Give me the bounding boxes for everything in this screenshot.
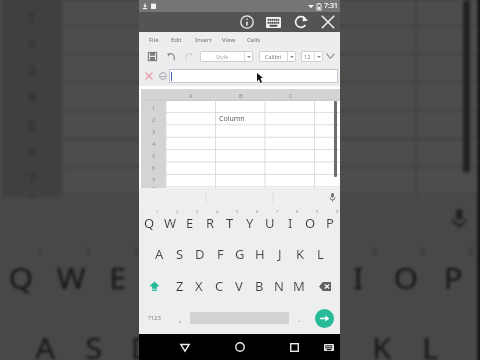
button[interactable]: K — [290, 238, 310, 270]
button[interactable]: Y — [238, 241, 286, 311]
button[interactable]: Undo — [164, 47, 178, 65]
button[interactable]: U — [286, 241, 334, 311]
button[interactable]: Save — [145, 47, 159, 65]
button[interactable]: Cancel — [142, 65, 155, 86]
button[interactable]: Q — [0, 241, 47, 311]
button[interactable]: A — [21, 311, 71, 360]
button[interactable] — [300, 164, 420, 191]
button[interactable]: Y — [240, 207, 260, 238]
button[interactable]: X — [189, 270, 209, 302]
button[interactable]: Refresh — [293, 12, 308, 32]
button[interactable]: View — [220, 32, 238, 47]
button[interactable]: C — [266, 89, 316, 101]
button[interactable]: E — [95, 241, 143, 311]
button[interactable]: V — [229, 270, 249, 302]
button[interactable]: K — [358, 311, 406, 360]
button[interactable]: H — [250, 238, 270, 270]
button[interactable] — [181, 109, 300, 136]
button[interactable] — [266, 185, 316, 188]
button[interactable]: W — [160, 207, 180, 238]
button[interactable]: 12 — [301, 51, 323, 62]
button[interactable]: Redo — [181, 47, 195, 65]
button[interactable]: Q — [139, 207, 160, 238]
button[interactable]: Insert — [193, 32, 214, 47]
button[interactable]: Calibri — [259, 51, 296, 62]
button[interactable]: Home — [227, 334, 253, 360]
button[interactable]: Voice input — [439, 198, 477, 241]
button[interactable] — [166, 173, 216, 185]
button[interactable] — [266, 125, 316, 137]
button[interactable] — [61, 82, 181, 109]
button[interactable] — [266, 113, 316, 125]
button[interactable]: E — [180, 207, 200, 238]
button[interactable] — [266, 137, 316, 149]
button[interactable]: Switch keyboard — [319, 334, 339, 360]
button[interactable]: S — [170, 238, 190, 270]
button[interactable] — [216, 185, 266, 188]
button[interactable] — [181, 55, 300, 82]
button[interactable]: W — [47, 241, 95, 311]
button[interactable]: Z — [170, 270, 189, 302]
button[interactable]: Recent apps — [281, 334, 307, 360]
button[interactable]: Insert function — [156, 65, 169, 86]
button[interactable]: F — [210, 238, 230, 270]
button[interactable]: I — [280, 207, 300, 238]
button[interactable]: J — [310, 311, 358, 360]
button[interactable] — [266, 161, 316, 173]
button[interactable] — [166, 161, 216, 173]
button[interactable] — [181, 164, 300, 191]
button[interactable] — [166, 101, 216, 113]
button[interactable] — [300, 191, 420, 198]
button[interactable]: U — [260, 207, 280, 238]
button[interactable]: Back — [172, 334, 198, 360]
button[interactable]: Enter — [309, 302, 340, 334]
button[interactable]: M — [289, 270, 309, 302]
button[interactable]: B — [216, 89, 266, 101]
button[interactable]: P — [320, 207, 340, 238]
button[interactable]: S — [71, 311, 119, 360]
button[interactable] — [61, 55, 181, 82]
button[interactable]: C — [209, 270, 229, 302]
button[interactable] — [216, 101, 266, 113]
button[interactable]: G — [230, 238, 250, 270]
button[interactable] — [61, 0, 181, 27]
button[interactable]: P — [429, 241, 477, 311]
button[interactable] — [61, 136, 181, 164]
button[interactable]: F — [167, 311, 214, 360]
button[interactable] — [266, 101, 316, 113]
button[interactable]: Cells — [245, 32, 263, 47]
button[interactable]: Style — [200, 51, 253, 62]
button[interactable] — [266, 173, 316, 185]
button[interactable]: G — [214, 311, 262, 360]
button[interactable]: A — [166, 89, 216, 101]
button[interactable] — [300, 82, 420, 109]
button[interactable]: ?123 — [139, 302, 170, 334]
button[interactable]: Backspace — [309, 270, 340, 302]
button[interactable]: D — [190, 238, 210, 270]
button[interactable] — [300, 27, 420, 55]
button[interactable] — [169, 69, 338, 83]
button[interactable] — [266, 149, 316, 161]
button[interactable]: O — [300, 207, 320, 238]
button[interactable]: N — [269, 270, 289, 302]
button[interactable] — [300, 136, 420, 164]
button[interactable] — [216, 173, 266, 185]
button[interactable]: A — [149, 238, 170, 270]
button[interactable] — [61, 191, 181, 198]
button[interactable]: T — [220, 207, 240, 238]
button[interactable] — [166, 113, 216, 125]
button[interactable]: Info — [239, 12, 254, 32]
button[interactable] — [181, 0, 300, 27]
button[interactable]: I — [334, 241, 382, 311]
button[interactable]: L — [406, 311, 453, 360]
button[interactable] — [61, 109, 181, 136]
button[interactable]: Column — [181, 27, 300, 55]
button[interactable] — [181, 82, 300, 109]
button[interactable]: O — [382, 241, 429, 311]
button[interactable]: D — [119, 311, 167, 360]
button[interactable]: Voice input — [324, 188, 340, 207]
button[interactable]: R — [200, 207, 220, 238]
